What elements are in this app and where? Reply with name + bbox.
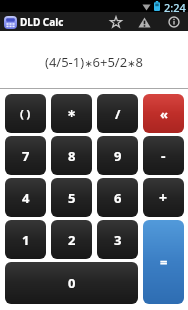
button[interactable]: / xyxy=(97,94,138,133)
staticText: ∗ xyxy=(67,107,77,120)
staticText: - xyxy=(161,146,166,165)
button[interactable] xyxy=(107,14,124,30)
button[interactable]: 8 xyxy=(51,136,92,175)
button[interactable]: + xyxy=(143,178,184,217)
button[interactable]: ∗ xyxy=(51,94,92,133)
staticText: 0 xyxy=(68,274,76,292)
staticText: 2:24 xyxy=(164,0,186,12)
staticText: = xyxy=(160,253,168,271)
button[interactable]: 7 xyxy=(5,136,46,175)
staticText: / xyxy=(115,105,121,123)
button[interactable]: - xyxy=(143,136,184,175)
button[interactable]: ( ) xyxy=(5,94,46,133)
button[interactable]: 1 xyxy=(5,220,46,259)
staticText: ( ) xyxy=(20,106,31,121)
staticText: 2 xyxy=(68,231,76,249)
staticText: « xyxy=(160,105,168,123)
button[interactable] xyxy=(165,14,182,30)
staticText: 7 xyxy=(22,147,30,165)
button[interactable] xyxy=(136,14,153,30)
staticText: + xyxy=(159,188,168,207)
button[interactable]: 4 xyxy=(5,178,46,217)
button[interactable]: 2 xyxy=(51,220,92,259)
button[interactable]: 3 xyxy=(97,220,138,259)
button[interactable]: 5 xyxy=(51,178,92,217)
button[interactable]: 9 xyxy=(97,136,138,175)
staticText: 5 xyxy=(68,189,76,207)
button[interactable]: 0 xyxy=(5,262,138,304)
staticText: DLD Calc xyxy=(20,15,64,29)
staticText: 8 xyxy=(68,147,76,165)
button[interactable]: = xyxy=(143,220,184,304)
button[interactable]: 6 xyxy=(97,178,138,217)
button[interactable]: (4/5-1)∗6+5/2∗8 xyxy=(0,31,188,88)
staticText: 1 xyxy=(22,231,30,249)
staticText: 6 xyxy=(114,189,122,207)
staticText: 4 xyxy=(22,189,30,207)
staticText: 9 xyxy=(114,147,122,165)
staticText: (4/5-1)∗6+5/2∗8 xyxy=(45,53,143,71)
staticText: 3 xyxy=(114,231,122,249)
button[interactable]: « xyxy=(143,94,184,133)
